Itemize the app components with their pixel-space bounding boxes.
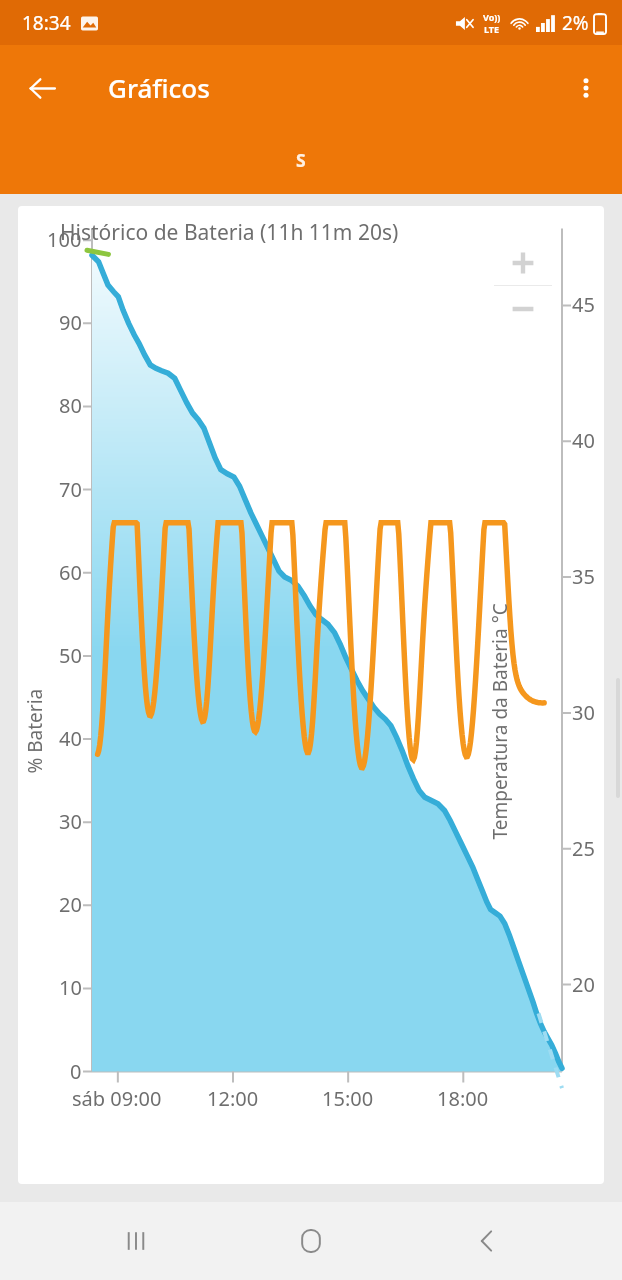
staticText: Temperatura da Bateria °C [486, 602, 512, 839]
staticText: 70 [59, 476, 82, 503]
staticText: 18:00 [437, 1085, 489, 1112]
staticText: Histórico de Bateria (11h 11m 20s) [60, 218, 399, 247]
staticText: 18:34 [22, 10, 71, 36]
staticText: 30 [572, 699, 595, 726]
staticText: % Bateria [21, 688, 47, 773]
button[interactable]: % Bateria [18, 206, 604, 1184]
staticText: 20 [59, 891, 82, 918]
button[interactable]: S [0, 130, 622, 194]
button[interactable]: More options [560, 62, 612, 114]
button[interactable]: Home [271, 1202, 351, 1280]
staticText: 60 [59, 559, 82, 586]
staticText: sáb 09:00 [72, 1085, 162, 1112]
staticText: 40 [59, 725, 82, 752]
button[interactable]: Zoom out [494, 286, 552, 332]
staticText: Gráficos [108, 70, 210, 105]
button[interactable]: Recents [96, 1202, 176, 1280]
staticText: 100 [47, 226, 82, 253]
button[interactable]: Back [447, 1202, 527, 1280]
staticText: 50 [59, 642, 82, 669]
staticText: 15:00 [322, 1085, 374, 1112]
staticText: S [296, 148, 306, 172]
staticText: 25 [572, 835, 595, 862]
staticText: Vo)) [483, 11, 501, 23]
staticText: 40 [572, 427, 595, 454]
staticText: 30 [59, 808, 82, 835]
staticText: LTE [484, 23, 500, 35]
staticText: 90 [59, 309, 82, 336]
staticText: 2% [562, 10, 589, 36]
staticText: 10 [59, 974, 82, 1001]
staticText: 20 [572, 971, 595, 998]
button[interactable]: Zoom in [494, 240, 552, 285]
staticText: 80 [59, 392, 82, 419]
staticText: 45 [572, 291, 595, 318]
button[interactable]: Back [14, 60, 70, 116]
staticText: 35 [572, 563, 595, 590]
staticText: 12:00 [207, 1085, 259, 1112]
staticText: 0 [70, 1058, 82, 1085]
